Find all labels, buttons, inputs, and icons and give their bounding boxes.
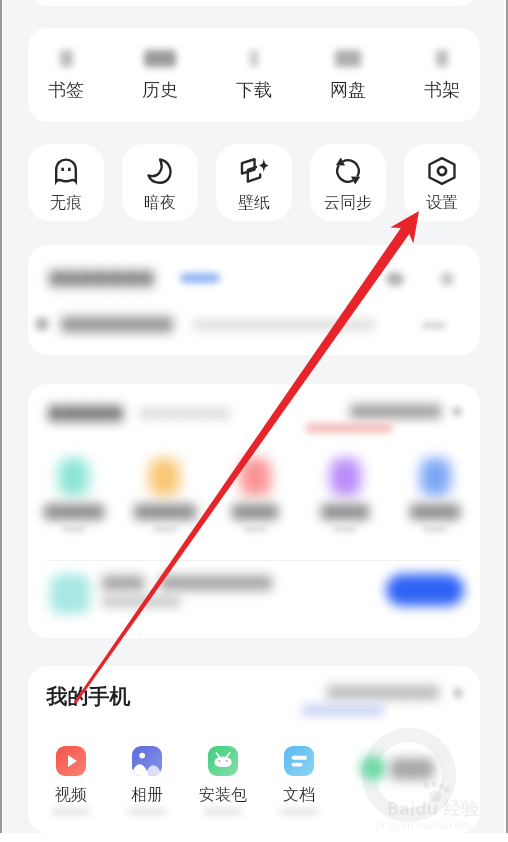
button[interactable]: Settings: [404, 144, 480, 221]
button[interactable]: 书架: [404, 28, 480, 122]
button[interactable]: 下载: [216, 28, 292, 122]
staticText: jingyan.baidu.com: [376, 817, 472, 832]
button[interactable]: Dark mode: [122, 144, 198, 221]
staticText: 我的手机: [46, 684, 130, 710]
button[interactable]: [46, 566, 462, 632]
staticText: 壁纸: [238, 193, 270, 213]
staticText: 网盘: [330, 79, 366, 102]
button[interactable]: 相册: [109, 746, 185, 815]
staticText: 书架: [424, 79, 460, 102]
button[interactable]: 网盘: [310, 28, 386, 122]
button[interactable]: 书签: [28, 28, 104, 122]
button[interactable]: [28, 245, 480, 355]
staticText: 相册: [131, 785, 163, 805]
staticText: 云同步: [324, 193, 372, 213]
staticText: 视频: [55, 785, 87, 805]
button[interactable]: 文档: [261, 746, 337, 815]
button[interactable]: Incognito: [28, 144, 104, 221]
button[interactable]: [390, 458, 480, 532]
button[interactable]: 历史: [122, 28, 198, 122]
staticText: 书签: [48, 79, 84, 102]
staticText: 设置: [426, 193, 458, 213]
button[interactable]: [119, 458, 210, 532]
button[interactable]: Cloud sync: [310, 144, 386, 221]
staticText: 安装包: [199, 785, 247, 805]
staticText: 下载: [236, 79, 272, 102]
button[interactable]: Wallpaper: [216, 144, 292, 221]
staticText: 历史: [142, 79, 178, 102]
button[interactable]: 视频: [33, 746, 109, 815]
button[interactable]: [28, 458, 119, 532]
button[interactable]: [300, 458, 390, 532]
staticText: 无痕: [50, 193, 82, 213]
button[interactable]: [210, 458, 300, 532]
button[interactable]: 安装包: [185, 746, 261, 815]
staticText: 暗夜: [144, 193, 176, 213]
staticText: 文档: [283, 785, 315, 805]
staticText: Baidu 经验: [387, 796, 479, 821]
